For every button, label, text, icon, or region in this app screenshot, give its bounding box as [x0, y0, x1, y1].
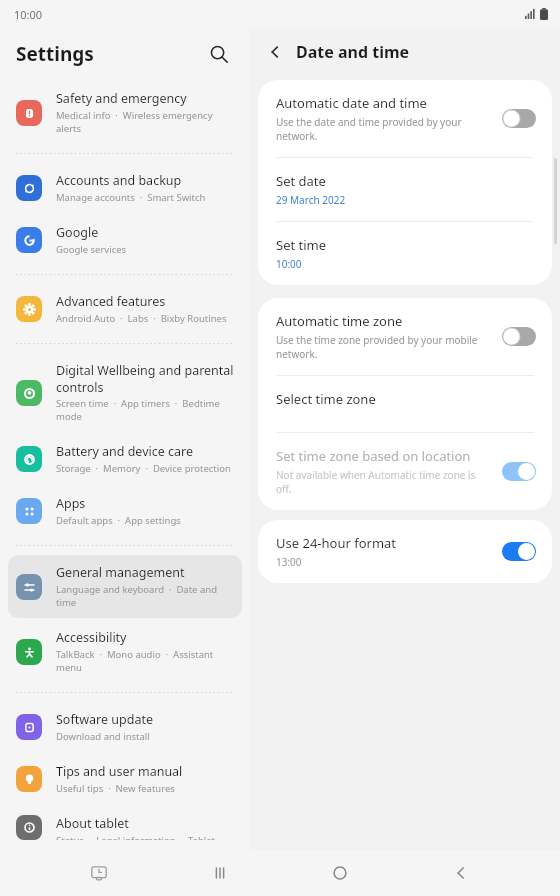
staticText: Automatic time zone — [276, 312, 403, 330]
staticText: Android Auto · Labs · Bixby Routines — [56, 312, 227, 325]
button[interactable]: Search — [202, 37, 236, 71]
staticText: Storage · Memory · Device protection — [56, 462, 231, 475]
staticText: Tips and user manual — [56, 763, 183, 780]
staticText: Date and time — [296, 41, 410, 63]
staticText: Useful tips · New features — [56, 782, 175, 795]
staticText: Status · Legal information · Tablet name — [56, 834, 234, 840]
button[interactable]: Advanced features — [8, 284, 242, 334]
staticText: Set time — [276, 236, 327, 254]
staticText: Select time zone — [276, 390, 376, 408]
staticText: Use the time zone provided by your mobil… — [276, 333, 492, 361]
button[interactable]: Set time — [258, 222, 552, 285]
button[interactable]: Automatic time zone — [258, 298, 552, 375]
staticText: Google services — [56, 243, 127, 256]
button[interactable]: Safety and emergency — [8, 81, 242, 144]
button[interactable]: Battery and device care — [8, 434, 242, 484]
staticText: Medical info · Wireless emergency alerts — [56, 109, 234, 135]
staticText: Language and keyboard · Date and time — [56, 583, 234, 609]
button[interactable]: Set date — [258, 158, 552, 221]
button[interactable]: On — [502, 462, 536, 481]
button[interactable]: Automatic date and time — [258, 80, 552, 157]
staticText: Use 24-hour format — [276, 534, 397, 552]
button[interactable]: Back — [439, 851, 483, 895]
button[interactable]: About tablet — [8, 806, 242, 849]
button[interactable]: Home — [318, 851, 362, 895]
staticText: Software update — [56, 711, 153, 728]
staticText: Digital Wellbeing and parental controls — [56, 362, 234, 395]
staticText: Settings — [16, 41, 94, 67]
button[interactable]: Select time zone — [258, 376, 552, 432]
button[interactable]: Screenshot — [77, 851, 121, 895]
staticText: Set time zone based on location — [276, 447, 471, 465]
staticText: Automatic date and time — [276, 94, 427, 112]
staticText: Safety and emergency — [56, 90, 187, 107]
staticText: Google — [56, 224, 99, 241]
button[interactable]: On — [502, 542, 536, 561]
staticText: Screen time · App timers · Bedtime mode — [56, 397, 234, 423]
staticText: General management — [56, 564, 185, 581]
staticText: Apps — [56, 495, 86, 512]
staticText: Use the date and time provided by your n… — [276, 115, 492, 143]
staticText: Not available when Automatic time zone i… — [276, 468, 492, 496]
staticText: Accessibility — [56, 629, 127, 646]
button[interactable]: Use 24-hour format — [258, 520, 552, 583]
staticText: Advanced features — [56, 293, 166, 310]
button[interactable]: Accounts and backup — [8, 163, 242, 213]
staticText: About tablet — [56, 815, 129, 832]
staticText: Download and install — [56, 730, 150, 743]
button[interactable]: Software update — [8, 702, 242, 752]
button[interactable]: Tips and user manual — [8, 754, 242, 804]
button[interactable]: Off — [502, 109, 536, 128]
button[interactable]: Off — [502, 327, 536, 346]
staticText: 10:00 — [14, 7, 43, 22]
button[interactable]: Google — [8, 215, 242, 265]
staticText: Default apps · App settings — [56, 514, 181, 527]
staticText: TalkBack · Mono audio · Assistant menu — [56, 648, 234, 674]
button[interactable]: Back — [260, 37, 290, 67]
button[interactable]: Set time zone based on location — [258, 433, 552, 510]
button[interactable]: General management — [8, 555, 242, 618]
staticText: Set date — [276, 172, 326, 190]
staticText: 10:00 — [276, 257, 302, 271]
staticText: 29 March 2022 — [276, 193, 346, 207]
staticText: Manage accounts · Smart Switch — [56, 191, 206, 204]
button[interactable]: Apps — [8, 486, 242, 536]
button[interactable]: Digital Wellbeing and parental controls — [8, 353, 242, 432]
button[interactable]: Recents — [198, 851, 242, 895]
staticText: 13:00 — [276, 555, 302, 569]
staticText: Battery and device care — [56, 443, 194, 460]
button[interactable]: Accessibility — [8, 620, 242, 683]
staticText: Accounts and backup — [56, 172, 182, 189]
